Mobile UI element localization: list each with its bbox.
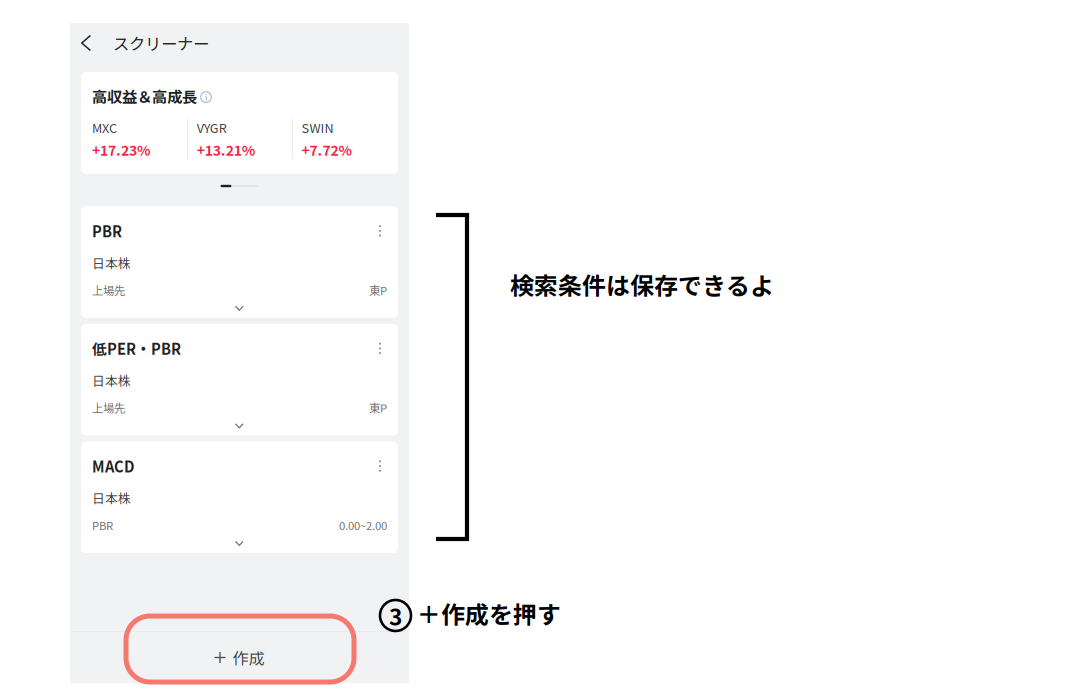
staticText: PBR bbox=[92, 517, 113, 533]
staticText: ＋作成を押す bbox=[417, 596, 561, 631]
staticText: +7.72% bbox=[302, 139, 352, 160]
staticText: 高収益＆高成長 bbox=[92, 85, 197, 107]
button[interactable]: More options for MACD bbox=[374, 460, 387, 472]
staticText: 日本株 bbox=[92, 371, 131, 389]
staticText: スクリーナー bbox=[113, 31, 209, 55]
staticText: 上場先 bbox=[92, 399, 125, 416]
staticText: +17.23% bbox=[92, 139, 150, 160]
button[interactable]: Back bbox=[70, 35, 113, 50]
staticText: MXC bbox=[92, 118, 117, 136]
button[interactable]: 作成 bbox=[70, 632, 409, 683]
staticText: VYGR bbox=[197, 118, 227, 136]
staticText: +13.21% bbox=[197, 139, 255, 160]
staticText: SWIN bbox=[302, 118, 334, 136]
staticText: MACD bbox=[92, 455, 134, 477]
button[interactable]: More options for PBR bbox=[374, 225, 387, 237]
staticText: PBR bbox=[92, 220, 122, 241]
staticText: 検索条件は保存できるよ bbox=[510, 267, 774, 302]
staticText: 東P bbox=[369, 399, 387, 416]
staticText: 低PER・PBR bbox=[92, 338, 181, 359]
button[interactable]: More options for 低PER・PBR bbox=[374, 342, 387, 354]
button[interactable]: MACD bbox=[81, 441, 398, 553]
button[interactable]: PBR bbox=[81, 206, 398, 318]
staticText: 上場先 bbox=[92, 282, 125, 298]
staticText: 東P bbox=[369, 282, 387, 298]
staticText: i bbox=[205, 91, 207, 103]
staticText: 作成 bbox=[232, 646, 264, 669]
staticText: 日本株 bbox=[92, 253, 131, 272]
staticText: 3 bbox=[389, 599, 402, 632]
staticText: 日本株 bbox=[92, 489, 131, 507]
staticText: 0.00~2.00 bbox=[339, 517, 387, 533]
button[interactable]: 低PER・PBR bbox=[81, 324, 398, 435]
